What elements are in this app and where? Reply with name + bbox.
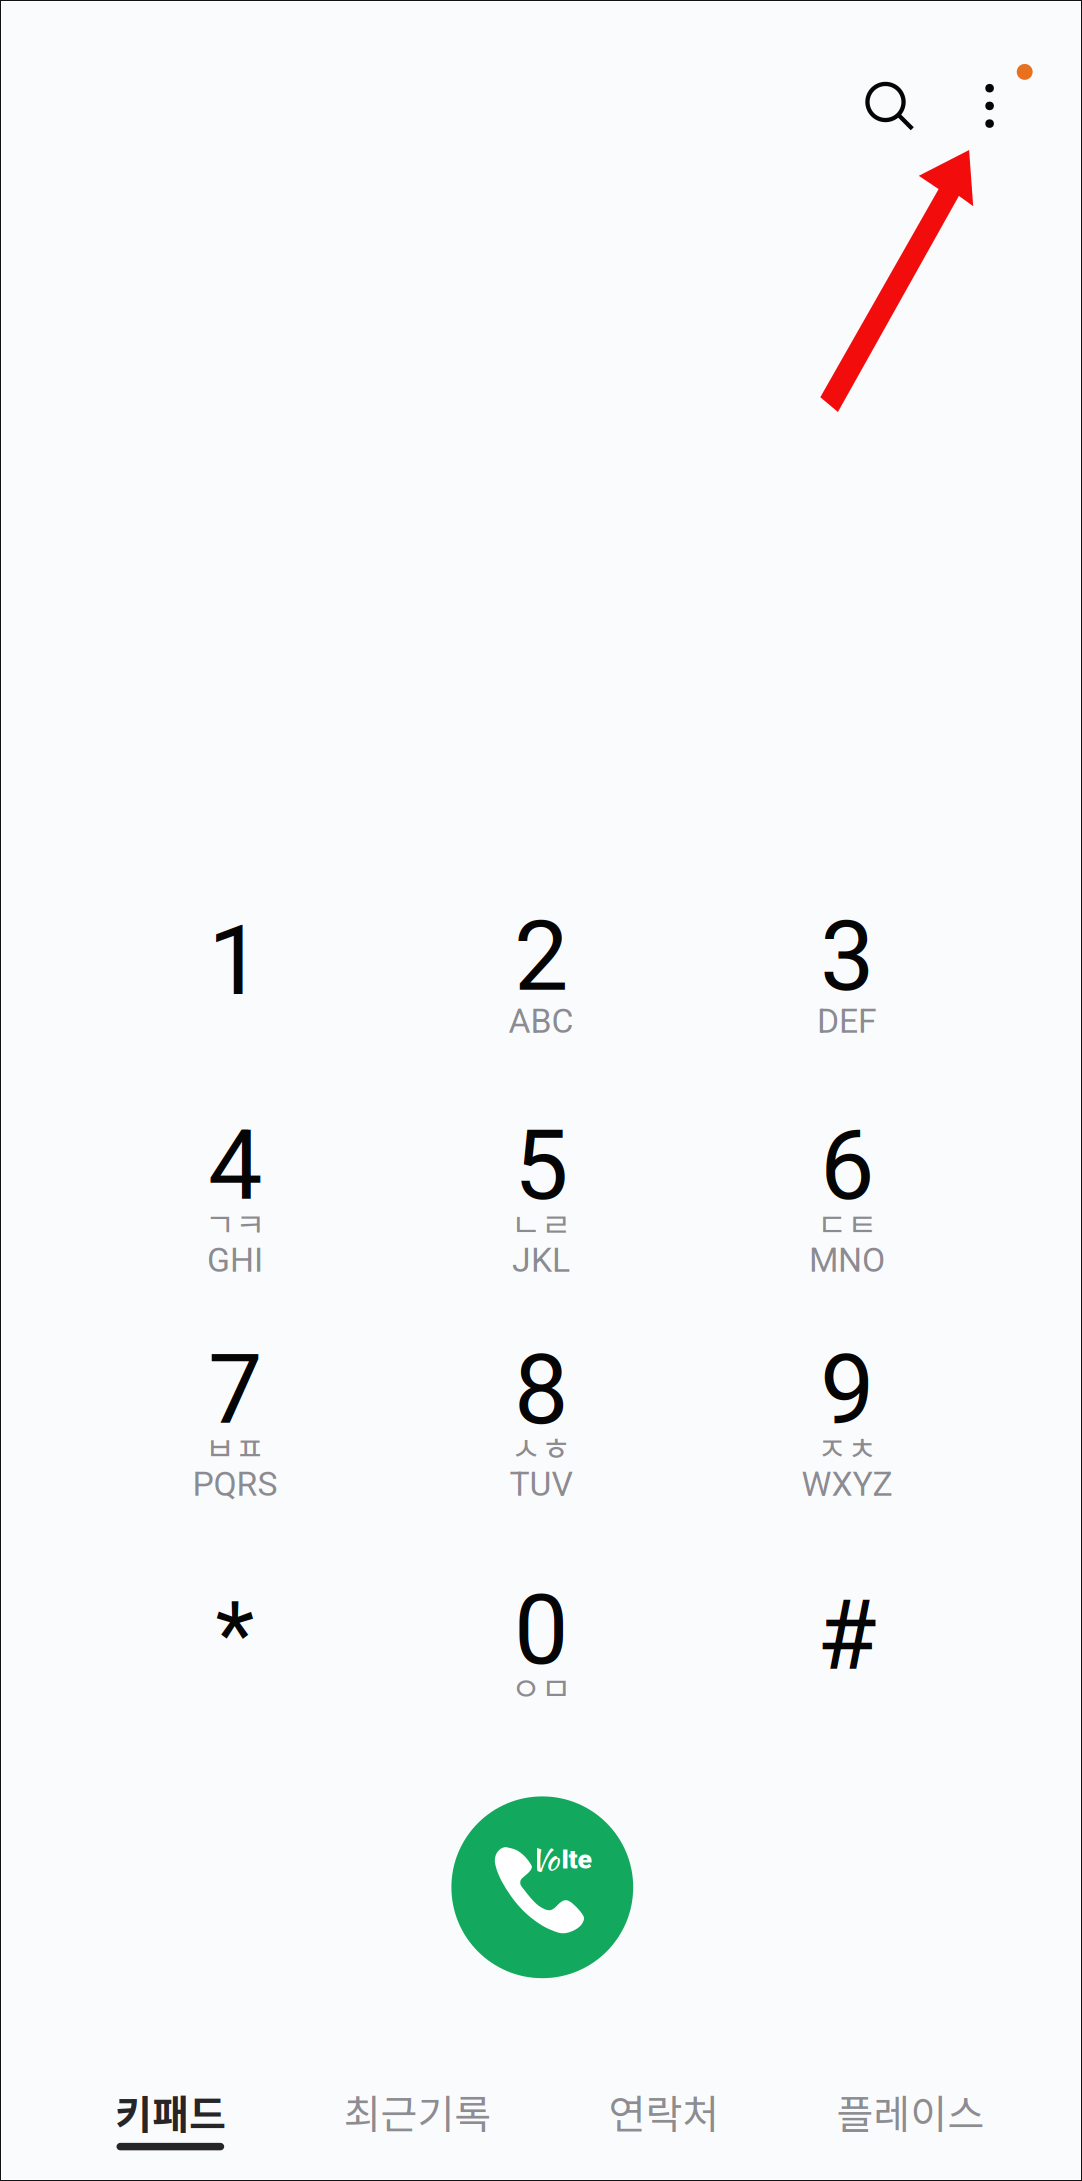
staticText: ㅅㅎ (511, 1423, 571, 1470)
staticText: 연락처 (608, 2082, 719, 2140)
staticText: MNO (809, 1240, 885, 1280)
staticText: ㄴㄹ (511, 1199, 571, 1246)
button[interactable]: * (82, 1519, 388, 1741)
staticText: DEF (817, 1001, 877, 1041)
staticText: 1 (208, 904, 262, 1018)
staticText: 5 (514, 1109, 568, 1222)
staticText: GHI (207, 1240, 263, 1280)
button[interactable]: 5 (388, 1054, 694, 1276)
button[interactable]: 2 (388, 844, 694, 1066)
button[interactable]: 1 (82, 844, 388, 1066)
button[interactable]: 0 (388, 1519, 694, 1741)
staticText: # (817, 1578, 877, 1692)
staticText: ㅇㅁ (511, 1663, 571, 1710)
staticText: TUV (509, 1464, 572, 1504)
button[interactable]: Call (437, 1782, 647, 1992)
staticText: ㄷㅌ (817, 1199, 877, 1246)
staticText: 최근기록 (343, 2082, 491, 2140)
button[interactable]: Search (837, 54, 933, 150)
staticText: lte (562, 1844, 593, 1875)
staticText: 키패드 (115, 2082, 226, 2140)
staticText: JKL (512, 1240, 570, 1280)
button[interactable]: 플레이스 (787, 2066, 1034, 2181)
staticText: 0 (514, 1574, 568, 1687)
button[interactable]: 6 (694, 1054, 1000, 1276)
staticText: 9 (820, 1333, 874, 1447)
staticText: 플레이스 (837, 2082, 985, 2140)
button[interactable]: 8 (388, 1278, 694, 1500)
staticText: 2 (514, 900, 568, 1013)
button[interactable]: 3 (694, 844, 1000, 1066)
button[interactable]: # (694, 1519, 1000, 1741)
staticText: WXYZ (801, 1464, 892, 1504)
button[interactable]: 키패드 (47, 2066, 294, 2181)
button[interactable]: 4 (82, 1054, 388, 1276)
staticText: 6 (820, 1109, 874, 1222)
staticText: ㅈㅊ (817, 1423, 877, 1470)
button[interactable]: 7 (82, 1278, 388, 1500)
staticText: 8 (514, 1333, 568, 1447)
staticText: * (215, 1583, 254, 1688)
staticText: Vo (530, 1838, 559, 1881)
button[interactable]: More options (942, 58, 1038, 154)
staticText: 7 (208, 1333, 262, 1447)
staticText: ABC (508, 1001, 573, 1041)
staticText: 3 (820, 900, 874, 1013)
button[interactable]: 연락처 (541, 2066, 787, 2181)
staticText: PQRS (192, 1464, 277, 1504)
button[interactable]: 9 (694, 1278, 1000, 1500)
staticText: ㄱㅋ (205, 1199, 265, 1246)
staticText: ㅂㅍ (205, 1423, 265, 1470)
button[interactable]: 최근기록 (294, 2066, 541, 2181)
staticText: 4 (208, 1109, 262, 1222)
